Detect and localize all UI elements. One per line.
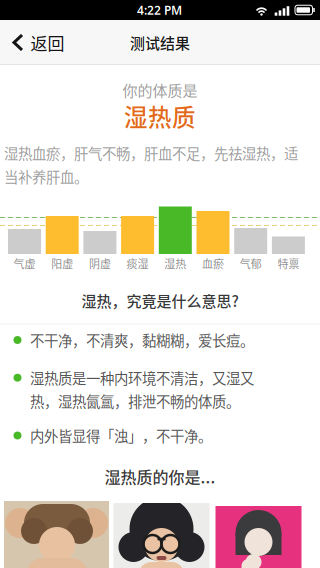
staticText: 湿热，究竟是什么意思? — [81, 290, 238, 311]
button[interactable]: 湿热质示例照片 2 — [113, 503, 209, 568]
staticText: 特禀 — [277, 255, 299, 271]
staticText: 湿热血瘀，肝气不畅，肝血不足，先祛湿热，适 当补养肝血。 — [4, 143, 298, 187]
staticText: 阴虚 — [89, 255, 111, 271]
staticText: 血瘀 — [202, 255, 224, 271]
staticText: 内外皆显得「浊」，不干净。 — [30, 425, 212, 446]
button[interactable]: 湿热质示例照片 3 — [215, 506, 301, 568]
staticText: 测试结果 — [130, 32, 190, 53]
staticText: 湿热质 — [124, 99, 196, 133]
staticText: 湿热 — [164, 255, 186, 271]
staticText: 4:22 PM — [137, 2, 182, 18]
staticText: 阳虚 — [51, 255, 73, 271]
staticText: 气虚 — [13, 255, 35, 271]
button[interactable]: 返回 — [12, 26, 78, 58]
staticText: 你的体质是 — [122, 79, 197, 101]
staticText: 气郁 — [240, 255, 262, 271]
button[interactable]: 湿热质示例照片 1 — [4, 501, 109, 568]
staticText: 痰湿 — [127, 255, 149, 271]
staticText: 不干净，不清爽，黏糊糊，爱长痘。 — [30, 330, 254, 350]
staticText: 湿热质是一种内环境不清洁，又湿又 热，湿热氤氲，排泄不畅的体质。 — [30, 367, 254, 411]
staticText: 返回 — [30, 30, 64, 55]
staticText: 湿热质的你是... — [104, 465, 215, 488]
